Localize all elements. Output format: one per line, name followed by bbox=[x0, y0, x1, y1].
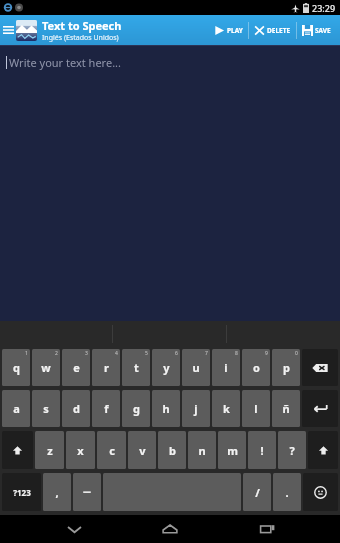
staticText: s bbox=[43, 401, 49, 416]
staticText: b bbox=[169, 443, 176, 458]
button[interactable]: p bbox=[272, 349, 300, 386]
button[interactable]: DELETE bbox=[254, 15, 291, 45]
button[interactable]: Home bbox=[147, 515, 193, 543]
staticText: 2 bbox=[55, 350, 58, 357]
staticText: h bbox=[162, 401, 170, 416]
staticText: 1 bbox=[25, 350, 28, 357]
staticText: e bbox=[73, 360, 80, 375]
button[interactable]: . bbox=[273, 473, 301, 511]
staticText: Text to Speech bbox=[42, 18, 122, 33]
button[interactable]: w bbox=[32, 349, 60, 386]
staticText: j bbox=[194, 401, 198, 416]
button[interactable]: d bbox=[62, 390, 90, 427]
staticText: ?123 bbox=[13, 487, 31, 498]
button[interactable]: s bbox=[32, 390, 60, 427]
button[interactable]: PLAY bbox=[214, 15, 243, 45]
button[interactable]: z bbox=[35, 431, 64, 469]
button[interactable]: h bbox=[152, 390, 180, 427]
button[interactable]: l bbox=[242, 390, 270, 427]
button[interactable]: Backspace bbox=[302, 349, 338, 386]
button[interactable]: Hide keyboard bbox=[51, 515, 97, 543]
button[interactable]: m bbox=[218, 431, 246, 469]
staticText: m bbox=[227, 443, 238, 458]
button[interactable]: ?123 bbox=[2, 473, 41, 511]
staticText: n bbox=[198, 443, 206, 458]
staticText: x bbox=[77, 443, 84, 458]
button[interactable]: Dash bbox=[73, 473, 101, 511]
button[interactable]: Open navigation drawer bbox=[0, 15, 16, 45]
button[interactable]: j bbox=[182, 390, 210, 427]
staticText: 4 bbox=[115, 350, 118, 357]
button[interactable]: / bbox=[243, 473, 271, 511]
button[interactable]: a bbox=[2, 390, 30, 427]
staticText: 5 bbox=[145, 350, 148, 357]
button[interactable]: Write your text here... bbox=[6, 55, 121, 70]
staticText: l bbox=[254, 401, 258, 416]
button[interactable]: b bbox=[158, 431, 186, 469]
staticText: q bbox=[13, 360, 20, 375]
button[interactable]: g bbox=[122, 390, 150, 427]
staticText: o bbox=[253, 360, 260, 375]
staticText: 6 bbox=[175, 350, 178, 357]
staticText: p bbox=[283, 360, 290, 375]
staticText: Inglés (Estados Unidos) bbox=[42, 33, 119, 43]
staticText: w bbox=[41, 360, 51, 375]
staticText: ! bbox=[260, 443, 264, 458]
staticText: SAVE bbox=[315, 26, 331, 35]
staticText: 8 bbox=[235, 350, 238, 357]
staticText: ? bbox=[289, 443, 295, 458]
button[interactable]: q bbox=[2, 349, 30, 386]
button[interactable]: Recent apps bbox=[244, 515, 290, 543]
staticText: / bbox=[255, 485, 260, 500]
staticText: 0 bbox=[295, 350, 298, 357]
staticText: f bbox=[104, 401, 109, 416]
button[interactable]: k bbox=[212, 390, 240, 427]
staticText: i bbox=[224, 360, 228, 375]
staticText: c bbox=[109, 443, 115, 458]
staticText: y bbox=[163, 360, 170, 375]
button[interactable]: n bbox=[188, 431, 216, 469]
button[interactable]: i bbox=[212, 349, 240, 386]
button[interactable]: u bbox=[182, 349, 210, 386]
staticText: d bbox=[73, 401, 80, 416]
staticText: ñ bbox=[282, 401, 290, 416]
staticText: Write your text here... bbox=[9, 55, 121, 70]
button[interactable]: f bbox=[92, 390, 120, 427]
button[interactable]: , bbox=[43, 473, 71, 511]
staticText: v bbox=[139, 443, 146, 458]
staticText: . bbox=[285, 485, 289, 500]
staticText: 3 bbox=[85, 350, 88, 357]
staticText: z bbox=[47, 443, 53, 458]
staticText: , bbox=[55, 485, 59, 500]
button[interactable]: o bbox=[242, 349, 270, 386]
button[interactable]: ! bbox=[248, 431, 276, 469]
staticText: k bbox=[223, 401, 230, 416]
button[interactable]: r bbox=[92, 349, 120, 386]
button[interactable]: Enter bbox=[302, 390, 338, 427]
button[interactable]: t bbox=[122, 349, 150, 386]
staticText: 23:29 bbox=[312, 2, 336, 14]
button[interactable]: SAVE bbox=[302, 15, 331, 45]
staticText: a bbox=[13, 401, 20, 416]
staticText: PLAY bbox=[227, 26, 243, 35]
button[interactable]: Emoji bbox=[303, 473, 338, 511]
button[interactable]: x bbox=[66, 431, 95, 469]
button[interactable]: e bbox=[62, 349, 90, 386]
staticText: DELETE bbox=[267, 26, 291, 35]
staticText: u bbox=[192, 360, 200, 375]
button[interactable]: y bbox=[152, 349, 180, 386]
button[interactable]: Shift bbox=[2, 431, 33, 469]
button[interactable]: ñ bbox=[272, 390, 300, 427]
staticText: 9 bbox=[265, 350, 268, 357]
button[interactable]: v bbox=[128, 431, 156, 469]
staticText: 7 bbox=[205, 350, 208, 357]
button[interactable]: ? bbox=[278, 431, 306, 469]
staticText: t bbox=[134, 360, 139, 375]
staticText: r bbox=[104, 360, 109, 375]
button[interactable]: c bbox=[97, 431, 126, 469]
button[interactable]: Shift bbox=[308, 431, 338, 469]
